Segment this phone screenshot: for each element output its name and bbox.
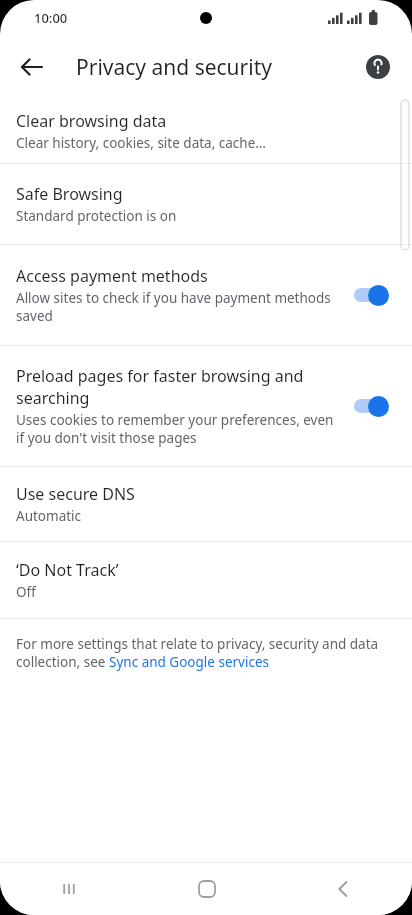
button[interactable]: Preload pages for faster browsing and se… (0, 346, 412, 466)
button[interactable]: Back (275, 863, 412, 915)
button[interactable]: Toggle Access payment methods (350, 279, 396, 311)
staticText: Access payment methods (16, 265, 208, 287)
staticText: For more settings that relate to privacy… (16, 635, 379, 653)
staticText: Privacy and security (76, 53, 272, 82)
staticText: Clear history, cookies, site data, cache… (16, 134, 266, 152)
button[interactable]: Access payment methods (0, 245, 412, 345)
staticText: Uses cookies to remember your preference… (16, 411, 338, 447)
staticText: ‘Do Not Track’ (16, 559, 119, 581)
button[interactable]: Use secure DNS (0, 467, 412, 541)
staticText: Use secure DNS (16, 483, 135, 505)
staticText: Standard protection is on (16, 207, 177, 225)
staticText: Clear browsing data (16, 110, 167, 132)
staticText: Safe Browsing (16, 183, 123, 205)
staticText: Off (16, 583, 36, 601)
button[interactable]: Back (10, 45, 54, 89)
staticText: Automatic (16, 507, 82, 525)
button[interactable]: Clear browsing data (0, 98, 412, 163)
button[interactable]: Recents (0, 863, 138, 915)
staticText: collection, see (16, 653, 109, 671)
button[interactable]: Sync and Google services (109, 653, 269, 671)
button[interactable]: Safe Browsing (0, 164, 412, 244)
staticText: Allow sites to check if you have payment… (16, 289, 338, 325)
staticText: 10:00 (34, 9, 68, 27)
staticText: Preload pages for faster browsing and se… (16, 365, 338, 409)
button[interactable]: Help (356, 45, 400, 89)
button[interactable]: Home (138, 863, 275, 915)
button[interactable]: ‘Do Not Track’ (0, 542, 412, 618)
button[interactable]: Toggle Preload pages (350, 390, 396, 422)
